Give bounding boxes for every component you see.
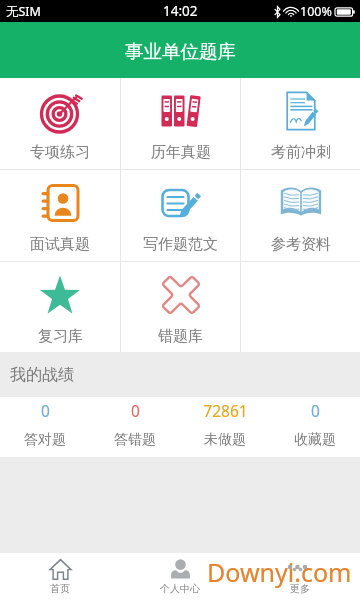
button[interactable]: Home [0,553,120,600]
button[interactable]: 72861 [180,397,270,457]
staticText: 历年真题 [151,143,211,162]
staticText: 我的战绩 [10,365,74,385]
button[interactable]: 0 [0,397,90,457]
button[interactable]: 复习库 [0,262,120,352]
staticText: 0 [131,400,140,421]
button[interactable]: 错题库 [121,262,240,352]
button[interactable]: 专项练习 [0,78,120,169]
staticText: 面试真题 [30,235,90,254]
button[interactable]: 0 [90,397,180,457]
staticText: 首页 [50,582,70,595]
button[interactable]: 写作题范文 [121,170,240,261]
staticText: Downyi.com [207,555,352,589]
button[interactable]: More [240,553,360,600]
button[interactable]: Profile [120,553,240,600]
staticText: 0 [41,400,50,421]
button[interactable]: 参考资料 [241,170,360,261]
staticText: 0 [311,400,320,421]
staticText: 更多 [290,582,310,595]
staticText: 答错题 [114,431,156,449]
staticText: 收藏题 [294,431,336,449]
button[interactable]: 面试真题 [0,170,120,261]
staticText: 错题库 [158,327,203,346]
staticText: 答对题 [24,431,66,449]
staticText: 未做题 [204,431,246,449]
staticText: 参考资料 [271,235,331,254]
staticText: 考前冲刺 [271,143,331,162]
button[interactable]: 考前冲刺 [241,78,360,169]
staticText: 个人中心 [160,582,200,595]
staticText: 专项练习 [30,143,90,162]
button[interactable]: 历年真题 [121,78,240,169]
staticText: 事业单位题库 [125,40,236,63]
staticText: 复习库 [38,327,83,346]
staticText: 72861 [203,400,248,421]
staticText: 写作题范文 [143,235,218,254]
button[interactable]: 0 [270,397,360,457]
staticText: 无SIM [6,3,41,20]
staticText: 14:02 [163,2,198,20]
staticText: 100% [300,3,332,20]
